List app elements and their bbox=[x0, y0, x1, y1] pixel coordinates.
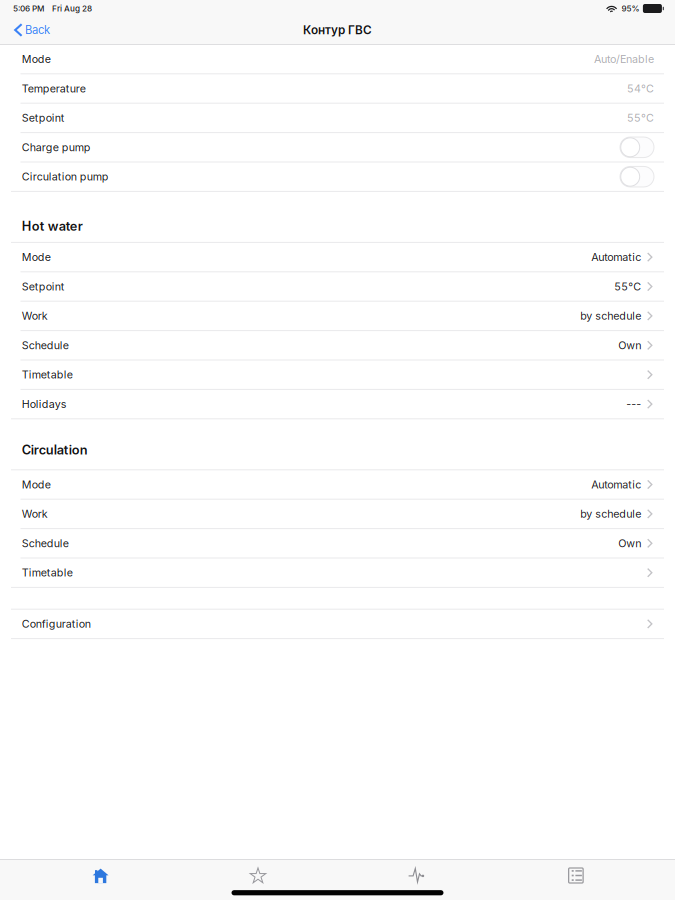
button[interactable]: Back bbox=[0, 17, 60, 43]
button[interactable]: Setpoint bbox=[0, 272, 675, 301]
button[interactable]: Mode bbox=[0, 45, 675, 73]
button[interactable]: Timetable bbox=[0, 558, 675, 587]
button[interactable]: Work bbox=[0, 500, 675, 528]
button[interactable]: Work bbox=[0, 302, 675, 330]
staticText: by schedule bbox=[580, 507, 641, 520]
button[interactable]: Monitoring bbox=[395, 860, 439, 891]
staticText: Mode bbox=[22, 478, 51, 491]
staticText: Automatic bbox=[591, 251, 641, 264]
button[interactable]: Schedule bbox=[0, 331, 675, 359]
button[interactable]: Home bbox=[77, 860, 124, 891]
staticText: 95% bbox=[621, 4, 639, 13]
staticText: Setpoint bbox=[22, 280, 65, 293]
staticText: --- bbox=[626, 398, 641, 411]
staticText: Temperature bbox=[22, 82, 86, 95]
staticText: Back bbox=[25, 23, 50, 37]
button[interactable]: Favourites bbox=[236, 860, 280, 891]
button[interactable]: Setpoint bbox=[0, 104, 675, 132]
staticText: Work bbox=[22, 507, 48, 520]
button[interactable]: Circulation pump bbox=[0, 162, 675, 191]
button[interactable]: Schedule bbox=[0, 529, 675, 557]
button[interactable]: Charge pump bbox=[0, 133, 675, 161]
button[interactable]: Mode bbox=[0, 243, 675, 271]
staticText: Timetable bbox=[22, 566, 73, 579]
button[interactable]: Mode bbox=[0, 470, 675, 499]
staticText: Timetable bbox=[22, 368, 73, 381]
staticText: Schedule bbox=[22, 537, 69, 550]
staticText: Mode bbox=[22, 53, 51, 66]
staticText: 5:06 PM bbox=[13, 4, 44, 13]
staticText: 54°C bbox=[627, 82, 654, 95]
staticText: Automatic bbox=[591, 478, 641, 491]
button[interactable]: Holidays bbox=[0, 390, 675, 418]
staticText: 55°C bbox=[627, 111, 654, 124]
staticText: Контур ГВС bbox=[303, 23, 372, 37]
button[interactable]: Journal bbox=[554, 860, 598, 891]
staticText: Circulation pump bbox=[22, 170, 109, 183]
staticText: Hot water bbox=[22, 218, 83, 234]
staticText: Work bbox=[22, 309, 48, 322]
staticText: Circulation bbox=[22, 442, 88, 458]
staticText: Mode bbox=[22, 251, 51, 264]
staticText: Setpoint bbox=[22, 111, 65, 124]
staticText: 55°C bbox=[614, 280, 641, 293]
staticText: Configuration bbox=[22, 617, 91, 630]
button[interactable]: Temperature bbox=[0, 74, 675, 103]
staticText: Own bbox=[618, 537, 641, 550]
staticText: Own bbox=[618, 339, 641, 352]
staticText: Fri Aug 28 bbox=[52, 4, 92, 13]
button[interactable]: Configuration bbox=[0, 610, 675, 638]
staticText: Charge pump bbox=[22, 141, 91, 154]
staticText: Holidays bbox=[22, 398, 67, 411]
button[interactable]: Timetable bbox=[0, 360, 675, 389]
staticText: Auto/Enable bbox=[594, 53, 654, 66]
staticText: Schedule bbox=[22, 339, 69, 352]
staticText: by schedule bbox=[580, 309, 641, 322]
